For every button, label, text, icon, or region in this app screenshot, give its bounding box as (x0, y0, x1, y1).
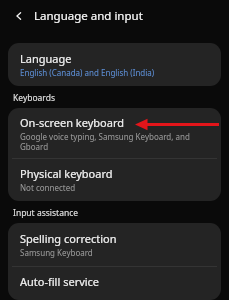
staticText: Not connected (20, 182, 76, 193)
button[interactable]: Language (8, 43, 221, 86)
staticText: Keyboards (13, 92, 55, 104)
button[interactable]: On-screen keyboard (8, 108, 221, 158)
button[interactable]: Physical keyboard (8, 159, 221, 201)
staticText: Samsung Keyboard (20, 247, 93, 258)
staticText: Language (20, 51, 72, 66)
button[interactable]: Back (10, 7, 28, 25)
button[interactable]: Auto-fill service (8, 267, 221, 300)
staticText: Input assistance (13, 207, 79, 219)
staticText: Physical keyboard (20, 166, 113, 181)
staticText: On-screen keyboard (20, 115, 125, 130)
button[interactable]: Spelling correction (8, 223, 221, 266)
staticText: Auto-fill service (20, 274, 100, 289)
staticText: Google voice typing, Samsung Keyboard, a… (20, 131, 190, 152)
staticText: Language and input (34, 8, 143, 24)
staticText: Spelling correction (20, 231, 117, 246)
staticText: English (Canada) and English (India) (20, 67, 155, 78)
